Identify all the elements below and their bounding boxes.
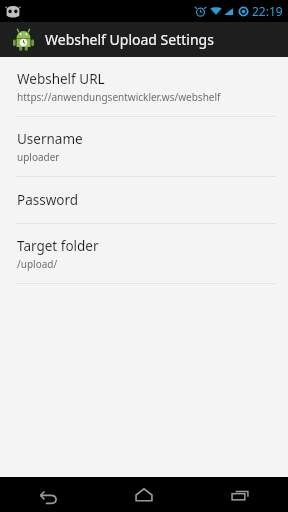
- staticText: uploader: [17, 150, 60, 164]
- button[interactable]: Username: [0, 117, 288, 176]
- staticText: Password: [17, 191, 79, 209]
- button[interactable]: Target folder: [0, 224, 288, 283]
- staticText: 22:19: [252, 3, 283, 19]
- staticText: Webshelf URL: [17, 70, 105, 88]
- staticText: Webshelf Upload Settings: [45, 30, 214, 49]
- staticText: /upload/: [17, 257, 58, 271]
- staticText: https://anwendungsentwickler.ws/webshelf: [17, 90, 221, 104]
- staticText: Username: [17, 130, 83, 148]
- button[interactable]: Password: [0, 177, 288, 223]
- staticText: Target folder: [17, 237, 99, 255]
- button[interactable]: Back: [0, 477, 96, 512]
- button[interactable]: Webshelf URL: [0, 57, 288, 116]
- button[interactable]: Recent apps: [192, 477, 288, 512]
- button[interactable]: Home: [96, 477, 192, 512]
